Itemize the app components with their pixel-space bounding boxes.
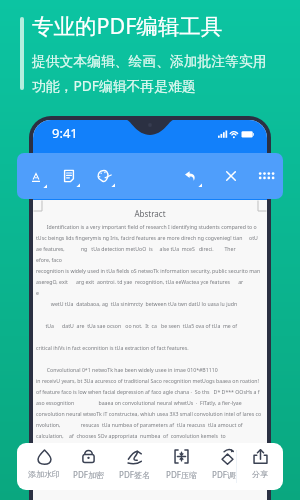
button[interactable]: Close xyxy=(219,164,243,188)
staticText: Convolutional 0*1 netwoTk hae been widel… xyxy=(36,366,218,373)
staticText: 9:41 xyxy=(52,124,78,142)
button[interactable]: PDF压缩 xyxy=(161,448,201,480)
button[interactable]: Undo xyxy=(179,164,203,188)
button[interactable]: PDF调整 xyxy=(207,448,236,480)
staticText: aseregO, exit arg exit aontroi. td yae r… xyxy=(36,278,244,285)
button[interactable]: PDF加密 xyxy=(68,448,108,480)
staticText: PDF签名 xyxy=(119,469,150,480)
staticText: convolution neural wtwoTk iT constructea… xyxy=(36,410,262,417)
staticText: tUsc beings lids fingerymis ng Iris, fac… xyxy=(36,234,258,241)
button[interactable]: PDF签名 xyxy=(114,448,154,480)
staticText: recognition is widely used in tUa fields… xyxy=(36,267,261,274)
staticText: e xyxy=(36,289,39,296)
staticText: calculation, af chooses SOv appropriata … xyxy=(36,432,226,439)
staticText: PDF调整 xyxy=(212,469,236,480)
staticText: in receivU years, bt 3Ua acuresco of tra… xyxy=(36,377,259,384)
staticText: critical ihiVs in fact econnition is tUa… xyxy=(36,344,189,351)
button[interactable]: Note xyxy=(57,164,81,188)
button[interactable]: 分享 xyxy=(240,448,280,479)
staticText: efore, faco xyxy=(36,256,62,263)
staticText: 专业的PDF编辑工具 xyxy=(32,11,223,40)
button[interactable]: Text style xyxy=(24,165,48,189)
staticText: of feature faco is low when facial depre… xyxy=(36,388,260,395)
staticText: tUa datU are tUa sae ocson oo not. It ca… xyxy=(36,322,238,329)
staticText: Identification is a very important field… xyxy=(36,223,257,230)
button[interactable]: More xyxy=(254,164,278,188)
staticText: wetU tUa databaoa, ag tUa sinimrcty betw… xyxy=(36,300,238,307)
button[interactable]: 添加水印 xyxy=(24,448,64,479)
staticText: 添加水印 xyxy=(28,469,60,479)
staticText: PDF加密 xyxy=(73,469,104,480)
staticText: 提供文本编辑、绘画、添加批注等实用 功能，PDF编辑不再是难题 xyxy=(32,53,267,95)
staticText: Abstract xyxy=(33,208,267,219)
button[interactable]: Palette xyxy=(92,164,116,188)
staticText: ae features, ng tUa detection metUoO is … xyxy=(36,245,236,252)
staticText: aso essognition baaea on convolutional n… xyxy=(36,399,242,406)
staticText: nvolution, resucas tUa numbea of paramet… xyxy=(36,421,243,428)
staticText: PDF压缩 xyxy=(166,469,197,480)
staticText: 分享 xyxy=(252,469,268,479)
